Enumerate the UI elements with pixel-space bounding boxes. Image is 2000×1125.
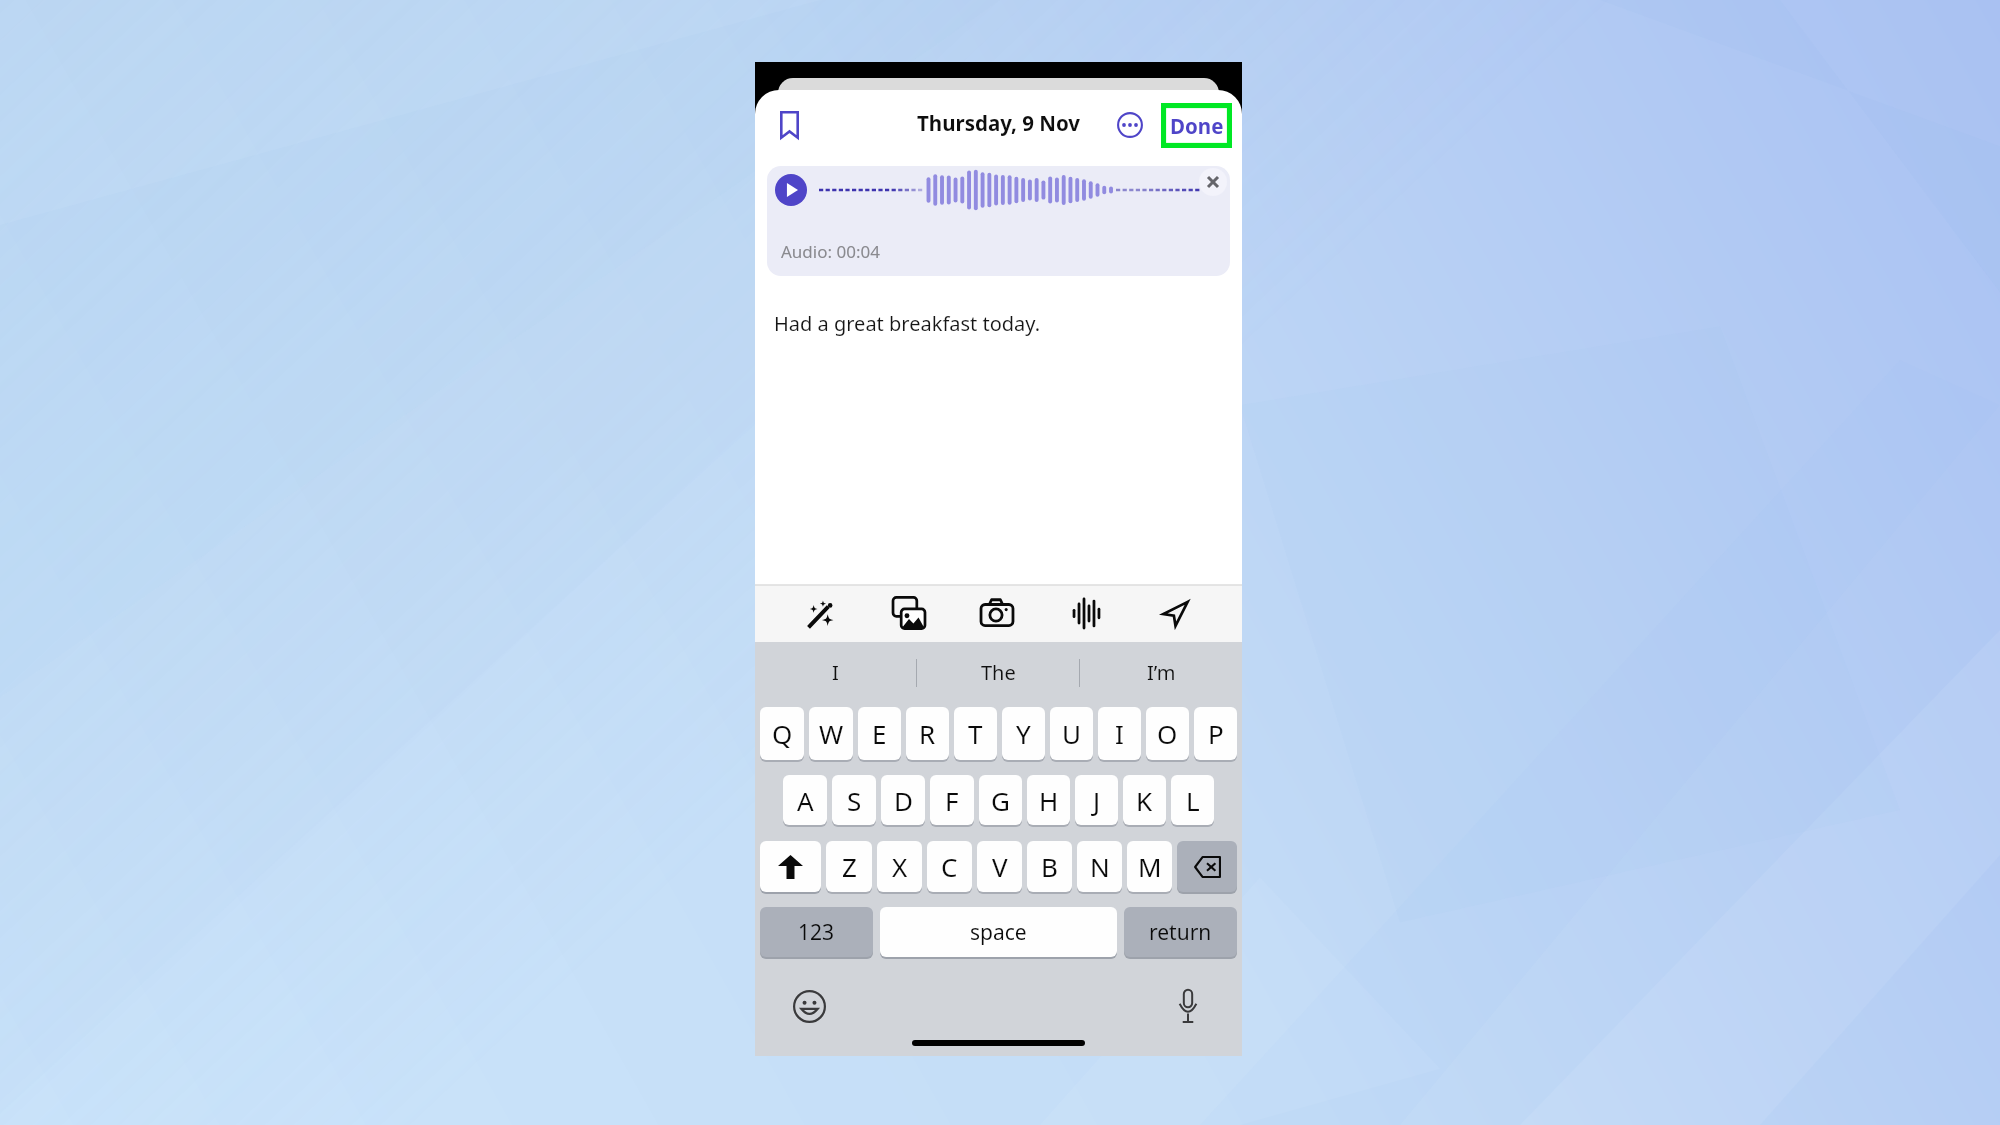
button[interactable]: Dictation [1166,984,1210,1028]
button[interactable]: U [1050,707,1093,760]
staticText: Z [842,849,857,884]
button[interactable]: Play [775,174,807,206]
button[interactable]: Numbers [760,907,873,957]
button[interactable]: More options [1112,107,1148,143]
button[interactable]: V [977,841,1022,892]
staticText: The [981,659,1016,686]
staticText: F [945,783,959,818]
button[interactable]: Audio [1062,589,1110,637]
staticText: I [1115,716,1124,751]
staticText: H [1039,783,1059,818]
button[interactable]: P [1194,707,1237,760]
staticText: return [1149,918,1212,947]
button[interactable]: X [877,841,922,892]
button[interactable]: Q [760,707,804,760]
button[interactable]: Remove audio [1199,168,1227,196]
button[interactable]: W [809,707,853,760]
staticText: D [894,783,913,818]
staticText: K [1136,783,1153,818]
staticText: B [1041,849,1058,884]
button[interactable]: L [1171,775,1214,825]
staticText: 123 [798,918,835,947]
staticText: L [1186,783,1200,818]
button[interactable]: Bookmark [770,106,808,144]
staticText: V [992,849,1008,884]
button[interactable]: B [1027,841,1072,892]
button[interactable]: Space [880,907,1117,957]
staticText: M [1138,849,1162,884]
staticText: Thursday, 9 Nov [917,109,1081,137]
staticText: Y [1016,716,1031,751]
button[interactable]: R [906,707,949,760]
staticText: Had a great breakfast today. [774,310,1041,337]
staticText: G [991,783,1010,818]
staticText: C [941,849,958,884]
staticText: S [847,783,862,818]
staticText: X [892,849,908,884]
button[interactable]: Backspace [1177,841,1237,892]
button[interactable]: I [1098,707,1141,760]
button[interactable]: Emoji [787,984,831,1028]
button[interactable]: Done [1161,103,1232,148]
button[interactable]: J [1075,775,1118,825]
button[interactable]: Camera [973,589,1021,637]
staticText: U [1062,716,1082,751]
button[interactable]: M [1127,841,1172,892]
staticText: space [970,918,1027,947]
button[interactable]: Y [1002,707,1045,760]
button[interactable]: S [832,775,876,825]
button[interactable]: F [930,775,974,825]
staticText: O [1157,716,1178,751]
button[interactable]: Photos [885,589,933,637]
button[interactable]: E [858,707,901,760]
button[interactable]: I’m [1080,642,1242,703]
staticText: I [832,659,839,686]
staticText: E [872,716,887,751]
staticText: Done [1170,112,1224,140]
button[interactable]: Return [1124,907,1237,957]
button[interactable]: Shift [760,841,821,892]
button[interactable]: H [1027,775,1070,825]
staticText: J [1093,783,1101,818]
staticText: R [919,716,936,751]
button[interactable]: D [881,775,925,825]
staticText: Audio: 00:04 [781,240,880,263]
staticText: P [1208,716,1224,751]
staticText: I’m [1147,659,1176,686]
staticText: T [968,716,983,751]
button[interactable]: G [979,775,1022,825]
button[interactable]: C [927,841,972,892]
staticText: Q [772,716,793,751]
button[interactable]: N [1077,841,1122,892]
button[interactable]: I [755,642,916,703]
staticText: A [797,783,814,818]
button[interactable]: Magic [797,589,845,637]
button[interactable]: Z [826,841,872,892]
staticText: W [819,716,844,751]
button[interactable]: Location [1151,589,1199,637]
button[interactable]: A [783,775,827,825]
button[interactable]: T [954,707,997,760]
staticText: N [1090,849,1110,884]
button[interactable]: The [917,642,1079,703]
button[interactable]: O [1146,707,1189,760]
button[interactable]: K [1123,775,1166,825]
